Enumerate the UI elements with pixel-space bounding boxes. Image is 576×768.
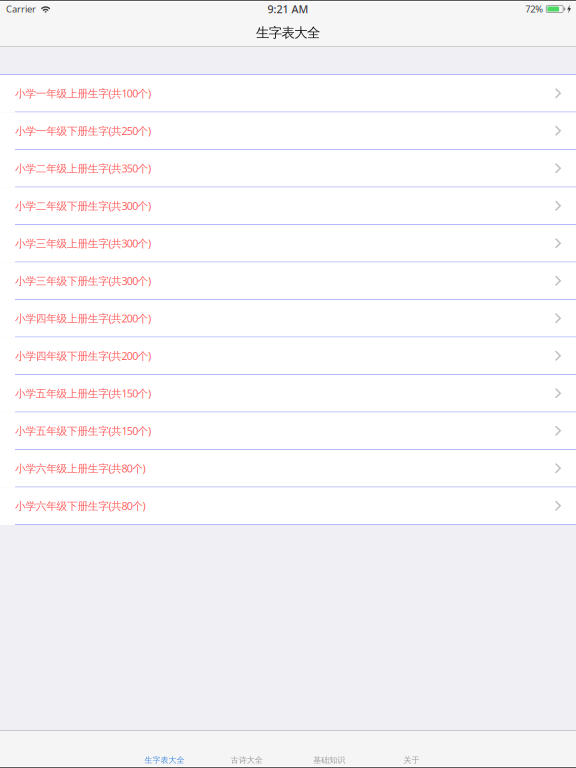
button[interactable]: 关于: [370, 731, 453, 766]
button[interactable]: 小学一年级下册生字(共250个): [0, 112, 576, 150]
staticText: 72%: [525, 3, 543, 15]
button[interactable]: 小学五年级下册生字(共150个): [0, 412, 576, 450]
button[interactable]: 小学六年级上册生字(共80个): [0, 450, 576, 487]
button[interactable]: 小学三年级上册生字(共300个): [0, 225, 576, 262]
staticText: 小学一年级上册生字(共100个): [15, 86, 151, 100]
staticText: 基础知识: [313, 755, 345, 765]
staticText: 小学一年级下册生字(共250个): [15, 124, 151, 138]
staticText: 小学四年级上册生字(共200个): [15, 311, 151, 325]
staticText: 小学六年级下册生字(共80个): [15, 499, 146, 513]
button[interactable]: 小学一年级上册生字(共100个): [0, 75, 576, 112]
staticText: 生字表大全: [144, 755, 184, 765]
staticText: 小学三年级下册生字(共300个): [15, 274, 151, 288]
staticText: 小学四年级下册生字(共200个): [15, 349, 151, 363]
staticText: 关于: [404, 755, 420, 765]
staticText: 小学五年级上册生字(共150个): [15, 386, 151, 400]
button[interactable]: 小学六年级下册生字(共80个): [0, 487, 576, 525]
staticText: 小学三年级上册生字(共300个): [15, 236, 151, 250]
staticText: 9:21 AM: [267, 2, 308, 16]
button[interactable]: 小学四年级上册生字(共200个): [0, 300, 576, 337]
button[interactable]: 古诗大全: [206, 731, 288, 766]
staticText: 生字表大全: [256, 24, 320, 41]
staticText: 小学二年级下册生字(共300个): [15, 199, 151, 213]
button[interactable]: 生字表大全: [123, 731, 206, 766]
staticText: 小学二年级上册生字(共350个): [15, 161, 151, 175]
staticText: Carrier: [6, 3, 36, 15]
staticText: 小学五年级下册生字(共150个): [15, 424, 151, 438]
button[interactable]: 小学二年级下册生字(共300个): [0, 187, 576, 225]
button[interactable]: 小学二年级上册生字(共350个): [0, 150, 576, 187]
button[interactable]: 小学五年级上册生字(共150个): [0, 375, 576, 412]
staticText: 古诗大全: [231, 755, 263, 765]
button[interactable]: 基础知识: [288, 731, 370, 766]
button[interactable]: 小学三年级下册生字(共300个): [0, 262, 576, 300]
button[interactable]: 小学四年级下册生字(共200个): [0, 337, 576, 375]
staticText: 小学六年级上册生字(共80个): [15, 461, 146, 475]
